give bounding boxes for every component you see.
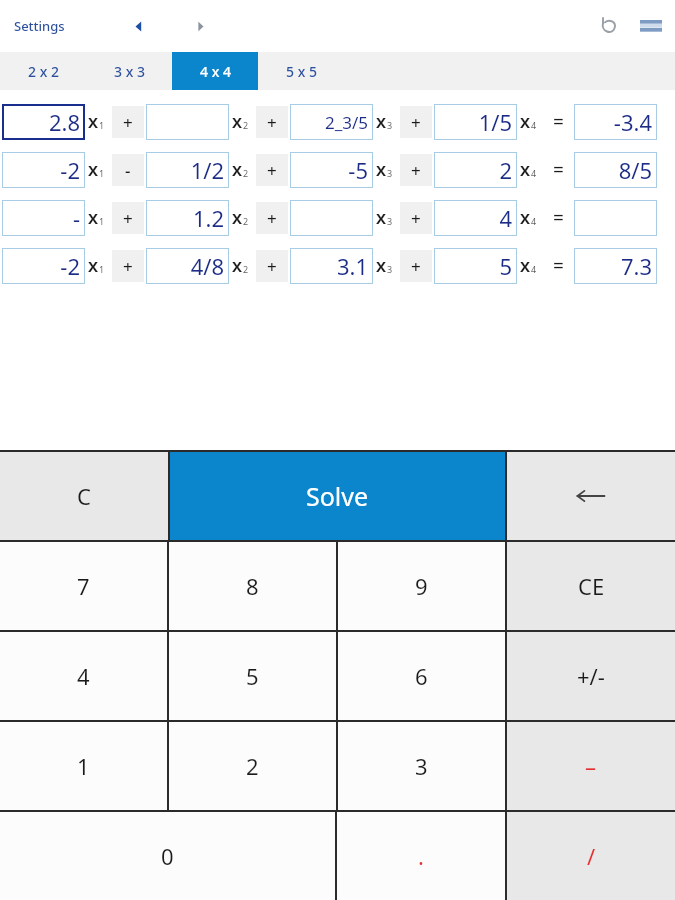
button[interactable]: -3.4 <box>574 104 657 140</box>
staticText: X <box>520 160 531 180</box>
staticText: -2 <box>60 251 80 281</box>
button[interactable]: + <box>112 202 144 234</box>
button[interactable] <box>146 104 229 140</box>
button[interactable]: 2 x 2 <box>0 52 86 90</box>
staticText: 4/8 <box>190 251 224 281</box>
staticText: 2 <box>499 155 512 185</box>
button[interactable]: + <box>400 202 432 234</box>
button[interactable]: 2 <box>434 152 517 188</box>
button[interactable]: 1/5 <box>434 104 517 140</box>
button[interactable]: 2.8 <box>2 104 85 140</box>
staticText: 1 <box>99 119 105 131</box>
button[interactable]: Settings <box>8 9 71 43</box>
button[interactable]: 1 <box>0 722 167 810</box>
staticText: +/- <box>577 661 605 691</box>
staticText: 5 <box>499 251 512 281</box>
staticText: 3 x 3 <box>114 62 145 81</box>
staticText: X <box>88 208 99 228</box>
staticText: 4 <box>499 203 512 233</box>
button[interactable]: / <box>507 812 675 900</box>
button[interactable]: 5 x 5 <box>258 52 344 90</box>
button[interactable]: 7 <box>0 542 167 630</box>
button[interactable]: +/- <box>507 632 675 720</box>
button[interactable]: 4 x 4 <box>172 52 258 90</box>
staticText: + <box>267 111 277 134</box>
button[interactable]: 9 <box>338 542 505 630</box>
button[interactable]: + <box>112 250 144 282</box>
button[interactable]: - <box>2 200 85 236</box>
button[interactable]: . <box>337 812 505 900</box>
staticText: 8/5 <box>618 155 652 185</box>
staticText: X <box>88 160 99 180</box>
button[interactable]: + <box>112 106 144 138</box>
staticText: X <box>232 160 243 180</box>
button[interactable]: Backspace <box>507 452 675 540</box>
button[interactable]: 8 <box>169 542 336 630</box>
staticText: 7 <box>77 571 90 601</box>
staticText: 3 <box>387 167 393 179</box>
button[interactable]: -2 <box>2 248 85 284</box>
button[interactable]: 4 <box>0 632 167 720</box>
button[interactable]: 5 <box>434 248 517 284</box>
button[interactable]: 1.2 <box>146 200 229 236</box>
button[interactable]: + <box>400 250 432 282</box>
button[interactable]: 3 x 3 <box>86 52 172 90</box>
staticText: X <box>376 112 387 132</box>
button[interactable]: 4 <box>434 200 517 236</box>
staticText: 5 x 5 <box>286 62 317 81</box>
button[interactable]: 3 <box>338 722 505 810</box>
staticText: + <box>411 207 421 230</box>
button[interactable]: + <box>256 202 288 234</box>
button[interactable]: 2_3/5 <box>290 104 373 140</box>
staticText: CE <box>578 571 605 601</box>
staticText: 1 <box>99 167 105 179</box>
staticText: 9 <box>415 571 428 601</box>
staticText: 2_3/5 <box>324 111 368 134</box>
button[interactable]: + <box>256 154 288 186</box>
staticText: 2 x 2 <box>28 62 59 81</box>
staticText: X <box>376 256 387 276</box>
button[interactable]: 6 <box>338 632 505 720</box>
staticText: + <box>411 111 421 134</box>
button[interactable]: Menu <box>633 8 669 44</box>
staticText: 3 <box>387 119 393 131</box>
staticText: / <box>587 841 596 871</box>
button[interactable]: + <box>256 250 288 282</box>
button[interactable] <box>574 200 657 236</box>
staticText: + <box>123 255 133 278</box>
button[interactable]: Next <box>182 8 218 44</box>
button[interactable]: 1/2 <box>146 152 229 188</box>
staticText: 3 <box>387 263 393 275</box>
button[interactable] <box>290 200 373 236</box>
staticText: = <box>553 253 564 279</box>
staticText: X <box>232 256 243 276</box>
staticText: + <box>267 207 277 230</box>
button[interactable]: + <box>400 106 432 138</box>
button[interactable]: - <box>112 154 144 186</box>
staticText: 6 <box>415 661 428 691</box>
button[interactable]: C <box>0 452 168 540</box>
button[interactable]: + <box>256 106 288 138</box>
staticText: C <box>77 481 91 511</box>
staticText: 3.1 <box>336 251 368 281</box>
button[interactable]: Undo <box>591 8 627 44</box>
button[interactable]: Solve <box>170 452 505 540</box>
button[interactable]: 4/8 <box>146 248 229 284</box>
button[interactable]: -5 <box>290 152 373 188</box>
button[interactable]: 0 <box>0 812 335 900</box>
button[interactable]: + <box>400 154 432 186</box>
button[interactable]: 7.3 <box>574 248 657 284</box>
button[interactable]: 5 <box>169 632 336 720</box>
staticText: 2 <box>246 751 259 781</box>
button[interactable]: 3.1 <box>290 248 373 284</box>
button[interactable]: Previous <box>120 8 156 44</box>
staticText: - <box>125 159 131 182</box>
button[interactable]: CE <box>507 542 675 630</box>
button[interactable]: 8/5 <box>574 152 657 188</box>
staticText: -3.4 <box>613 107 652 137</box>
button[interactable]: 2 <box>169 722 336 810</box>
staticText: X <box>232 112 243 132</box>
button[interactable]: – <box>507 722 675 810</box>
button[interactable]: -2 <box>2 152 85 188</box>
staticText: + <box>267 255 277 278</box>
